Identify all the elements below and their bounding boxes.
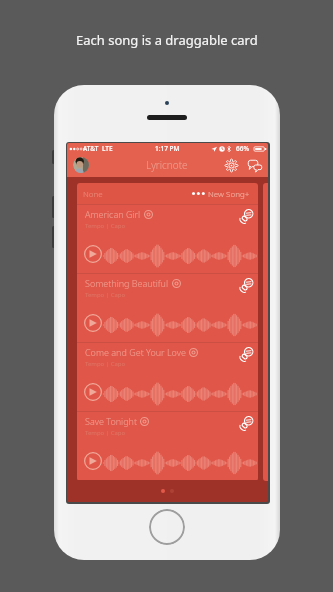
button[interactable]: Come and Get Your Love [77,342,258,411]
button[interactable]: Play [84,383,102,401]
staticText: New Song+ [208,188,250,199]
button[interactable]: Record [239,276,253,295]
button[interactable]: American Girl [77,204,258,273]
button[interactable]: Something Beautiful [77,273,258,342]
staticText: Come and Get Your Love [85,346,186,358]
staticText: AT&T [83,144,99,153]
staticText: Something Beautiful [85,277,169,289]
button[interactable]: None [77,183,258,204]
button[interactable]: Settings [225,159,238,172]
button[interactable]: Play [84,452,102,470]
button[interactable]: Save Tonight [77,411,258,480]
button[interactable]: Metronome [172,279,181,288]
staticText: None [83,188,103,199]
button[interactable]: Metronome [189,348,198,357]
button[interactable]: Play [84,245,102,263]
staticText: Tempo | Capo [85,222,126,230]
button[interactable]: Record [239,345,253,364]
button[interactable]: Play [84,314,102,332]
button[interactable]: Record [239,207,253,226]
staticText: American Girl [85,208,141,220]
staticText: Tempo | Capo [85,291,126,299]
staticText: 66% [236,144,249,153]
staticText: Tempo | Capo [85,429,126,437]
staticText: Tempo | Capo [85,360,126,368]
staticText: Save Tonight [85,415,137,427]
staticText: LTE [102,144,113,153]
button[interactable]: Metronome [144,210,153,219]
staticText: Lyricnote [146,158,188,172]
staticText: 1:17 PM [155,144,180,153]
button[interactable]: Metronome [140,417,149,426]
button[interactable]: Messages [248,158,262,172]
button[interactable]: Record [239,414,253,433]
staticText: Each song is a draggable card [76,31,258,49]
button[interactable]: Profile [73,157,89,173]
